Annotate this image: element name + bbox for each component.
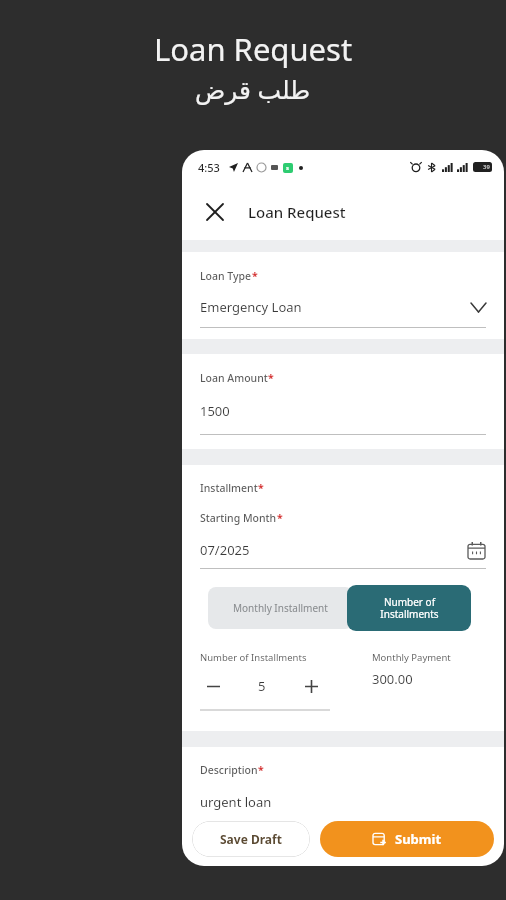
- staticText: Loan Type: [200, 269, 252, 283]
- staticText: s: [286, 164, 290, 172]
- button[interactable]: 07/2025: [200, 540, 486, 560]
- staticText: *: [258, 763, 264, 777]
- button[interactable]: 1500: [200, 402, 486, 420]
- staticText: طلب قرض: [195, 72, 311, 106]
- button[interactable]: Submit: [320, 821, 494, 857]
- staticText: Loan Amount: [200, 371, 268, 385]
- staticText: *: [252, 269, 258, 283]
- staticText: 300.00: [372, 670, 413, 688]
- staticText: Number of Installments: [380, 595, 439, 621]
- staticText: Number of Installments: [200, 651, 307, 664]
- button[interactable]: Save Draft: [192, 821, 310, 857]
- staticText: Submit: [395, 830, 442, 848]
- staticText: Monthly Installment: [233, 601, 328, 615]
- staticText: 5: [258, 677, 266, 695]
- staticText: Save Draft: [220, 831, 282, 847]
- button[interactable]: Decrease: [200, 673, 226, 699]
- button[interactable]: Monthly Installment: [208, 587, 353, 629]
- button[interactable]: urgent loan: [200, 793, 486, 811]
- button[interactable]: Emergency Loan: [200, 298, 486, 316]
- staticText: 07/2025: [200, 541, 466, 559]
- staticText: 4:53: [198, 160, 220, 175]
- staticText: Installment: [200, 481, 258, 495]
- staticText: Starting Month: [200, 511, 277, 525]
- staticText: *: [277, 511, 283, 525]
- staticText: 39: [483, 163, 490, 171]
- staticText: *: [268, 371, 274, 385]
- staticText: Loan Request: [248, 202, 346, 222]
- staticText: Description: [200, 763, 258, 777]
- staticText: Loan Request: [154, 28, 353, 70]
- button[interactable]: Close: [200, 197, 230, 227]
- button[interactable]: Increase: [298, 673, 324, 699]
- other: Pick month: [466, 540, 486, 560]
- staticText: Emergency Loan: [200, 298, 471, 316]
- staticText: *: [258, 481, 264, 495]
- staticText: Monthly Payment: [372, 651, 451, 664]
- button[interactable]: Number of Installments: [347, 585, 471, 631]
